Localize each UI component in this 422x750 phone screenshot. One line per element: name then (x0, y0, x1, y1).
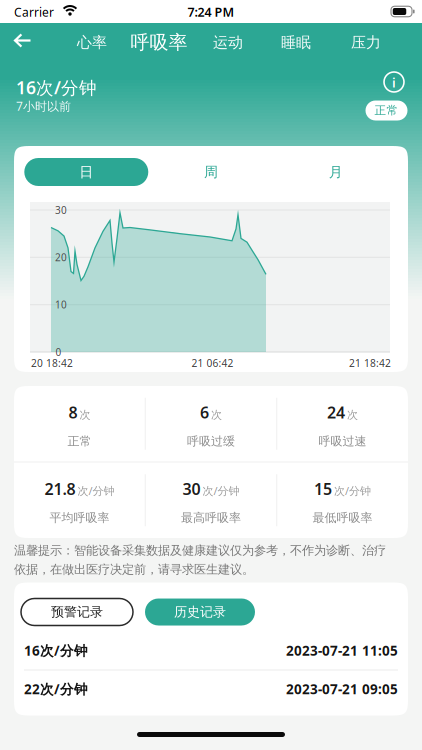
staticText: 20 (55, 251, 67, 264)
staticText: 温馨提示：智能设备采集数据及健康建议仅为参考，不作为诊断、治疗 (14, 543, 386, 558)
staticText: 周 (204, 163, 218, 181)
staticText: 22次/分钟 (24, 680, 88, 698)
staticText: 8 (68, 402, 77, 423)
staticText: 预警记录 (51, 604, 103, 620)
staticText: 次 (79, 408, 90, 421)
staticText: 压力 (351, 33, 381, 52)
staticText: 2023-07-21 11:05 (286, 641, 398, 659)
staticText: 10 (55, 298, 67, 311)
staticText: 月 (329, 163, 343, 181)
staticText: 6 (200, 402, 209, 423)
staticText: 平均呼吸率 (49, 510, 109, 525)
staticText: 依据，在做出医疗决定前，请寻求医生建议。 (14, 562, 254, 577)
staticText: 正常 (374, 103, 398, 117)
staticText: 呼吸过速 (318, 434, 366, 449)
staticText: 30 (182, 478, 200, 499)
staticText: 次/分钟 (202, 483, 239, 498)
staticText: 次 (211, 408, 222, 421)
staticText: 呼吸过缓 (187, 434, 235, 449)
staticText: 30 (55, 203, 67, 217)
staticText: 最低呼吸率 (312, 510, 372, 525)
staticText: 心率 (77, 33, 107, 52)
staticText: 7小时以前 (16, 98, 71, 114)
staticText: 最高呼吸率 (181, 510, 241, 525)
staticText: 次/分钟 (334, 483, 371, 498)
staticText: 21.8 (44, 478, 75, 499)
staticText: 历史记录 (174, 604, 226, 620)
staticText: 20 18:42 (31, 356, 73, 370)
staticText: 次 (347, 408, 358, 421)
staticText: 24 (327, 402, 345, 423)
staticText: 16次/分钟 (16, 76, 97, 99)
staticText: 7:24 PM (187, 4, 234, 20)
staticText: 15 (314, 478, 332, 499)
staticText: 次/分钟 (77, 483, 114, 498)
staticText: 2023-07-21 09:05 (286, 680, 398, 698)
staticText: 睡眠 (281, 33, 311, 52)
staticText: 运动 (213, 33, 243, 52)
staticText: Carrier (14, 4, 54, 20)
staticText: 21 18:42 (349, 356, 391, 370)
staticText: 呼吸率 (130, 31, 187, 54)
staticText: 0 (55, 345, 61, 359)
staticText: 正常 (67, 434, 91, 449)
staticText: 16次/分钟 (24, 641, 88, 659)
staticText: 21 06:42 (191, 356, 233, 370)
staticText: 日 (79, 163, 93, 181)
staticText: i (392, 74, 396, 91)
